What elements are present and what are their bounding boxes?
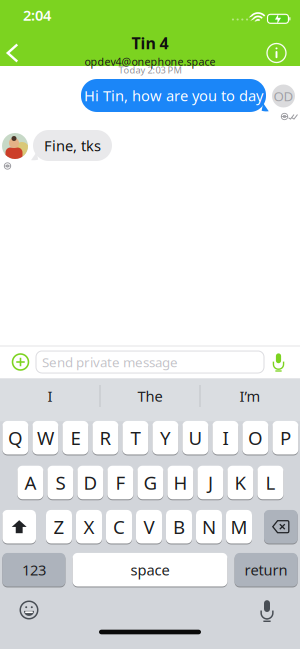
staticText: The [137,386,162,406]
button[interactable]: Shift [2,510,36,543]
staticText: OD [273,87,293,105]
button[interactable]: U [182,421,208,454]
button[interactable]: 123 [2,553,65,586]
button[interactable]: D [77,466,103,499]
staticText: V [143,514,154,539]
button[interactable]: Delete [264,510,298,543]
staticText: space [130,560,169,579]
button[interactable]: C [106,510,132,543]
staticText: Tin 4 [131,32,168,53]
staticText: E [70,425,80,450]
button[interactable]: I [212,421,238,454]
staticText: D [83,470,97,495]
button[interactable]: W [32,421,58,454]
staticText: Q [8,425,23,450]
staticText: Z [53,514,64,539]
staticText: opdev4@onephone.space [84,54,215,69]
staticText: U [188,425,202,450]
staticText: I’m [239,386,260,406]
button[interactable]: Record audio [269,350,288,374]
staticText: W [37,425,54,450]
button[interactable]: N [196,510,222,543]
button[interactable]: The [105,379,195,413]
staticText: L [265,470,275,495]
button[interactable]: B [166,510,192,543]
staticText: J [208,470,213,495]
staticText: Hi Tin, how are you to day [84,86,263,105]
button[interactable]: Q [2,421,28,454]
staticText: H [173,470,187,495]
staticText: Y [160,425,171,450]
button[interactable]: J [197,466,223,499]
staticText: R [99,425,111,450]
staticText: B [173,514,185,539]
button[interactable]: Z [46,510,72,543]
staticText: C [113,514,125,539]
staticText: X [83,514,94,539]
staticText: P [280,425,291,450]
staticText: 2:04 [23,5,51,25]
button[interactable]: T [122,421,148,454]
staticText: T [130,425,140,450]
staticText: N [202,514,216,539]
staticText: O [248,425,263,450]
button[interactable]: Send private message [36,351,264,373]
staticText: F [115,470,125,495]
button[interactable]: I [5,379,95,413]
button[interactable]: Y [152,421,178,454]
button[interactable]: K [227,466,253,499]
staticText: 123 [22,560,46,579]
button[interactable]: G [137,466,163,499]
button[interactable]: return [235,553,298,586]
staticText: K [234,470,246,495]
button[interactable]: O [242,421,268,454]
staticText: I [222,425,228,450]
button[interactable]: Back [0,36,25,69]
button[interactable]: R [92,421,118,454]
button[interactable]: S [47,466,73,499]
staticText: M [230,514,247,539]
staticText: Fine, tks [44,136,101,155]
button[interactable]: Attach [9,351,31,373]
button[interactable]: space [73,553,227,586]
button[interactable]: V [136,510,162,543]
button[interactable]: M [226,510,252,543]
staticText: return [245,560,288,579]
staticText: A [24,470,36,495]
button[interactable]: A [17,466,43,499]
staticText: Send private message [42,353,178,371]
button[interactable]: E [62,421,88,454]
button[interactable]: Info [263,39,290,66]
staticText: G [143,470,157,495]
button[interactable]: I’m [205,379,295,413]
button[interactable]: P [272,421,298,454]
staticText: S [55,470,65,495]
button[interactable]: X [76,510,102,543]
staticText: Today 2:03 PM [118,64,181,76]
button[interactable]: Dictation [255,596,278,625]
button[interactable]: Emoji [16,597,42,623]
button[interactable]: L [257,466,283,499]
button[interactable]: H [167,466,193,499]
staticText: I [47,386,52,406]
button[interactable]: F [107,466,133,499]
